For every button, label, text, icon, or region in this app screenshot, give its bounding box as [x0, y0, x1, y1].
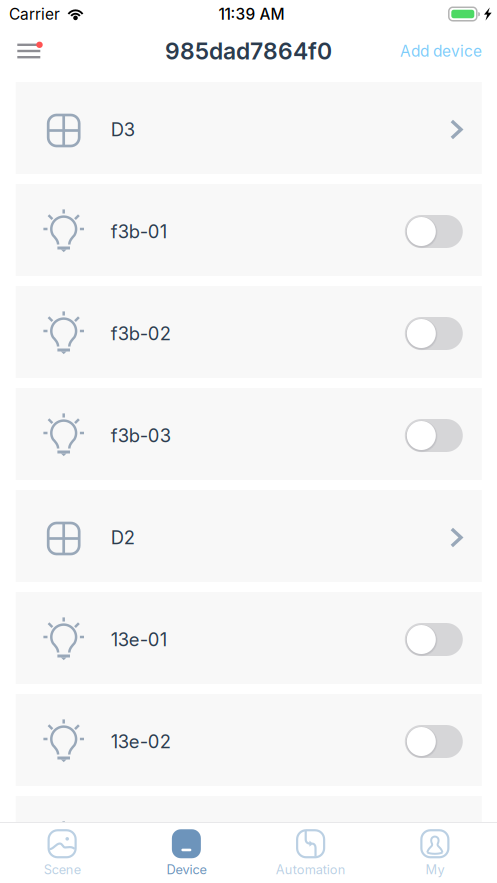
button[interactable]: f3b-03 — [16, 388, 482, 480]
staticText: D2 — [111, 526, 135, 549]
button[interactable]: My — [373, 823, 497, 883]
staticText: f3b-03 — [111, 424, 171, 447]
staticText: 11:39 AM — [218, 5, 284, 23]
staticText: f3b-02 — [111, 322, 171, 345]
button[interactable]: 13e-01 — [16, 592, 482, 684]
button[interactable]: Device — [124, 823, 248, 883]
staticText: Device — [166, 862, 206, 877]
button[interactable]: f3b-01 — [16, 184, 482, 276]
staticText: f3b-01 — [111, 220, 167, 243]
button[interactable]: D3 — [16, 82, 482, 174]
staticText: 13e-01 — [111, 628, 167, 651]
button[interactable]: 13e-02 — [16, 694, 482, 786]
button[interactable]: Automation — [248, 823, 373, 883]
staticText: My — [425, 862, 444, 877]
staticText: 13e-02 — [111, 730, 171, 753]
staticText: Carrier — [9, 5, 60, 23]
staticText: Add device — [400, 42, 482, 60]
button[interactable]: Add device — [380, 28, 497, 74]
staticText: Scene — [44, 862, 81, 877]
staticText: Automation — [276, 862, 346, 877]
button[interactable]: D2 — [16, 490, 482, 582]
button[interactable]: Scene — [0, 823, 124, 883]
button[interactable]: Menu — [0, 28, 63, 74]
button[interactable]: 13e-03 — [16, 796, 482, 883]
staticText: D3 — [111, 118, 135, 141]
staticText: 985dad7864f0 — [165, 37, 332, 65]
button[interactable]: f3b-02 — [16, 286, 482, 378]
